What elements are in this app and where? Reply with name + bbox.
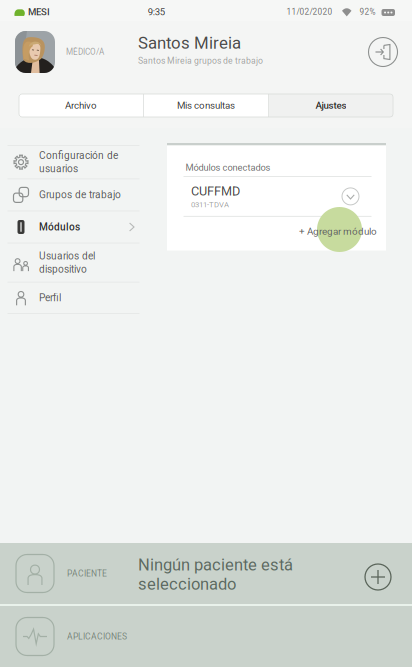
staticText: Ajustes — [315, 100, 346, 111]
staticText: MESI — [28, 6, 50, 18]
staticText: CUFFMD — [191, 184, 240, 198]
button[interactable]: Usuarios del — [0, 243, 146, 282]
button[interactable]: Perfil — [0, 283, 146, 313]
staticText: Santos Mireia grupos de trabajo — [138, 56, 263, 66]
button[interactable]: PACIENTE — [0, 543, 412, 604]
staticText: PACIENTE — [67, 568, 107, 578]
staticText: Módulos — [39, 221, 80, 233]
button[interactable]: Mis consultas — [144, 94, 268, 117]
staticText: dispositivo — [39, 263, 87, 275]
staticText: 11/02/2020 — [286, 7, 332, 17]
staticText: 92% — [359, 7, 375, 17]
staticText: Santos Mireia — [138, 33, 241, 53]
button[interactable]: APLICACIONES — [0, 606, 412, 667]
button[interactable]: Configuración de — [0, 146, 146, 178]
button[interactable]: Ajustes — [269, 94, 393, 117]
button[interactable]: Grupos de trabajo — [0, 179, 146, 210]
staticText: Usuarios del — [39, 250, 95, 262]
staticText: Perfil — [39, 292, 61, 304]
staticText: Archivo — [65, 100, 97, 111]
button[interactable]: + Agregar módulo — [167, 215, 386, 248]
button[interactable]: Archivo — [19, 94, 143, 117]
button[interactable]: Cerrar sesión — [361, 30, 405, 74]
staticText: MÉDICO/A — [66, 47, 104, 57]
staticText: usuarios — [39, 163, 78, 175]
staticText: Mis consultas — [177, 100, 235, 111]
staticText: Ningún paciente está seleccionado — [138, 555, 293, 594]
staticText: 0311-TDVA — [191, 200, 229, 209]
staticText: APLICACIONES — [67, 631, 127, 641]
staticText: Configuración de — [39, 149, 118, 161]
staticText: Grupos de trabajo — [39, 189, 121, 201]
staticText: Módulos conectados — [185, 162, 270, 173]
staticText: + Agregar módulo — [299, 226, 377, 237]
button[interactable]: Módulos — [0, 211, 146, 243]
staticText: 9:35 — [148, 6, 165, 18]
